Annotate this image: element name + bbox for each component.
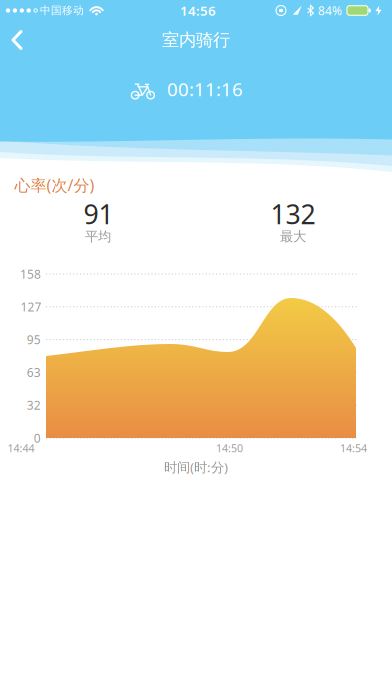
staticText: 14:54 — [340, 441, 367, 455]
staticText: 91 — [83, 196, 113, 232]
staticText: 14:56 — [180, 2, 216, 19]
staticText: 00:11:16 — [167, 77, 243, 101]
staticText: 63 — [27, 364, 41, 380]
staticText: 室内骑行 — [162, 29, 230, 51]
staticText: 中国移动 — [40, 4, 84, 17]
staticText: 最大 — [280, 228, 306, 245]
staticText: 132 — [270, 196, 315, 232]
staticText: 时间(时:分) — [164, 458, 228, 476]
staticText: 127 — [20, 299, 41, 315]
staticText: 95 — [27, 332, 41, 347]
button[interactable]: Back — [11, 29, 31, 50]
staticText: 14:44 — [7, 441, 34, 455]
staticText: 平均 — [85, 228, 111, 245]
staticText: 32 — [27, 397, 41, 413]
staticText: 14:50 — [216, 441, 243, 455]
staticText: 0 — [34, 430, 41, 446]
staticText: 158 — [20, 266, 41, 282]
staticText: 84% — [318, 2, 342, 18]
staticText: 心率(次/分) — [14, 174, 94, 196]
